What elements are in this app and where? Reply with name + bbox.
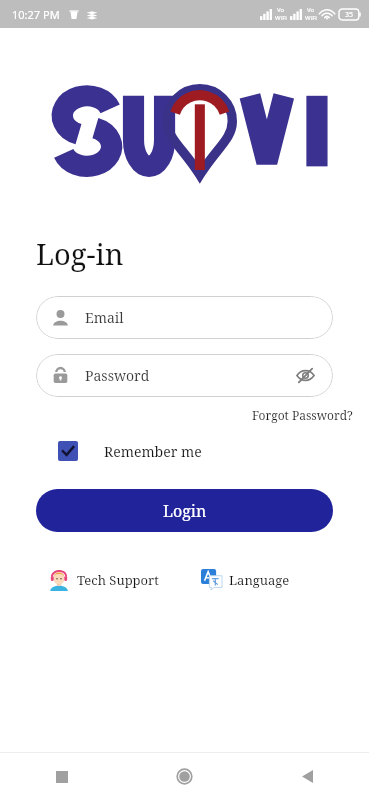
staticText: WiFi [275,14,287,22]
staticText: 10:27 PM [12,7,60,22]
staticText: Login [163,500,207,522]
staticText: Email [85,308,124,327]
staticText: Log-in [36,234,124,273]
staticText: 35 [345,10,354,20]
staticText: Password [85,366,150,385]
button[interactable]: Show password [294,364,317,387]
button[interactable]: Forgot Password? [252,405,369,425]
button[interactable]: Password [36,354,333,397]
button[interactable]: Login [36,489,333,532]
button[interactable]: Remember me [58,441,202,461]
button[interactable]: Home [123,753,246,800]
staticText: Vo [307,6,315,14]
button[interactable]: Recent apps [0,753,123,800]
button[interactable]: Back [246,753,369,800]
staticText: Remember me [104,442,202,461]
staticText: Forgot Password? [252,407,353,423]
staticText: Language [229,571,290,589]
staticText: Tech Support [77,571,159,589]
staticText: WiFi [305,14,317,22]
button[interactable]: Language [201,569,290,590]
staticText: Vo [277,6,285,14]
button[interactable]: Email [36,296,333,339]
button[interactable]: Tech Support [48,569,159,591]
